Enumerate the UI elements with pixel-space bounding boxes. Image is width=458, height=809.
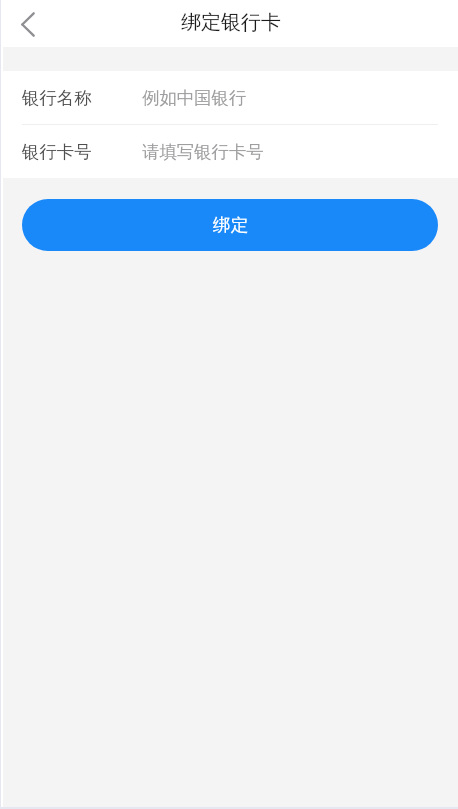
staticText: 银行名称 (22, 87, 92, 109)
button[interactable]: 银行卡号 (0, 125, 458, 178)
staticText: 绑定银行卡 (181, 10, 281, 35)
staticText: 绑定 (213, 214, 248, 236)
button[interactable]: 绑定 (22, 199, 438, 251)
button[interactable]: 银行名称 (0, 71, 458, 124)
staticText: 银行卡号 (22, 141, 92, 163)
staticText: 请填写银行卡号 (142, 141, 264, 163)
staticText: 例如中国银行 (142, 87, 247, 109)
button[interactable]: Back (10, 6, 46, 42)
